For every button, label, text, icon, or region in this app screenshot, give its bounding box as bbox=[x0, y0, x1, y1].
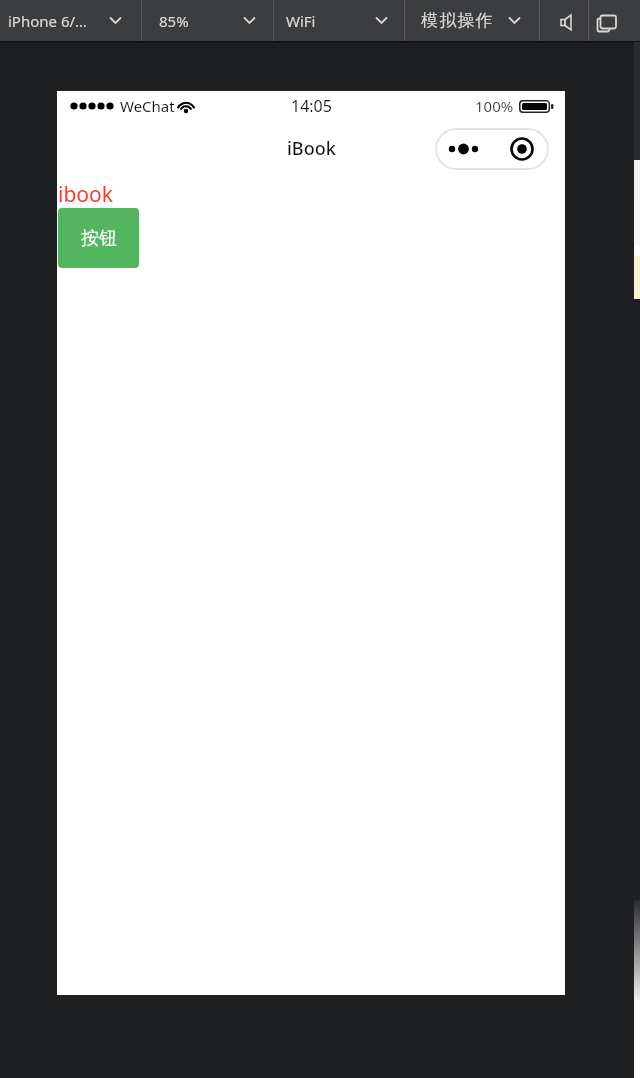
staticText: ibook bbox=[58, 180, 113, 209]
button[interactable]: 模拟操作 bbox=[421, 0, 494, 41]
staticText: 模拟操作 bbox=[421, 10, 494, 31]
staticText: 85% bbox=[159, 11, 189, 31]
staticText: 14:05 bbox=[291, 95, 332, 117]
button[interactable] bbox=[596, 10, 620, 34]
button[interactable] bbox=[435, 128, 549, 170]
staticText: iBook bbox=[287, 136, 336, 161]
button[interactable] bbox=[556, 11, 578, 33]
button[interactable]: 按钮 bbox=[58, 208, 139, 268]
staticText: iPhone 6/… bbox=[8, 11, 87, 31]
staticText: WeChat bbox=[120, 96, 175, 116]
button[interactable]: WiFi bbox=[286, 0, 316, 41]
staticText: WiFi bbox=[286, 11, 316, 31]
button[interactable]: iPhone 6/… bbox=[8, 0, 87, 41]
staticText: 按钮 bbox=[81, 227, 117, 250]
staticText: 100% bbox=[475, 96, 514, 116]
button[interactable]: 85% bbox=[159, 0, 189, 41]
